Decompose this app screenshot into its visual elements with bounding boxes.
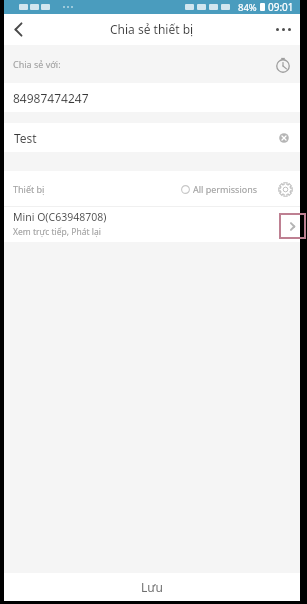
staticText: 09:01 <box>268 0 294 14</box>
staticText: All permissions <box>193 183 258 195</box>
staticText: Test <box>14 130 37 146</box>
staticText: Lưu <box>141 579 163 595</box>
button[interactable]: Test <box>4 123 300 152</box>
staticText: Chia sẻ với: <box>13 58 61 70</box>
button[interactable]: All permissions <box>180 179 259 199</box>
staticText: Xem trực tiếp, Phát lại <box>13 226 101 238</box>
staticText: Mini O(C63948708) <box>13 210 107 224</box>
button[interactable]: Clear <box>275 129 293 147</box>
button[interactable]: Lưu <box>4 573 300 601</box>
button[interactable]: More options <box>269 15 297 43</box>
button[interactable]: Mini O(C63948708) <box>4 206 300 242</box>
button[interactable]: Settings <box>276 180 295 199</box>
button[interactable]: Open device <box>279 213 306 239</box>
staticText: Thiết bị <box>13 183 45 195</box>
staticText: 84987474247 <box>13 90 89 106</box>
button[interactable]: History <box>273 54 293 74</box>
button[interactable]: Back <box>4 15 32 43</box>
button[interactable]: 84987474247 <box>4 83 300 112</box>
staticText: 84% <box>238 1 257 14</box>
staticText: Chia sẻ thiết bị <box>110 21 194 37</box>
